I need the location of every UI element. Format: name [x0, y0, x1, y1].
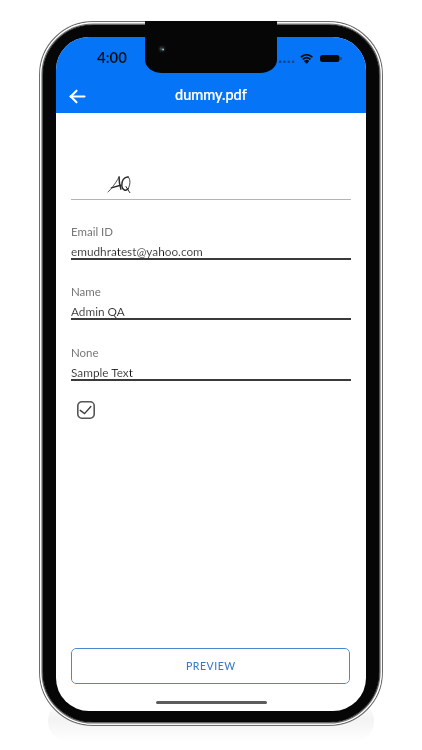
staticText: emudhratest@yahoo.com: [71, 244, 203, 258]
staticText: Admin QA: [71, 304, 125, 318]
button[interactable]: Checkbox, checked: [77, 401, 95, 419]
staticText: PREVIEW: [186, 660, 236, 673]
staticText: None: [71, 346, 99, 360]
staticText: Sample Text: [71, 365, 133, 379]
button[interactable]: PREVIEW: [71, 648, 350, 684]
button[interactable]: Back: [64, 83, 91, 110]
staticText: dummy.pdf: [175, 86, 247, 103]
staticText: 4:00: [97, 48, 127, 66]
staticText: Name: [71, 285, 101, 299]
staticText: Email ID: [71, 225, 114, 239]
